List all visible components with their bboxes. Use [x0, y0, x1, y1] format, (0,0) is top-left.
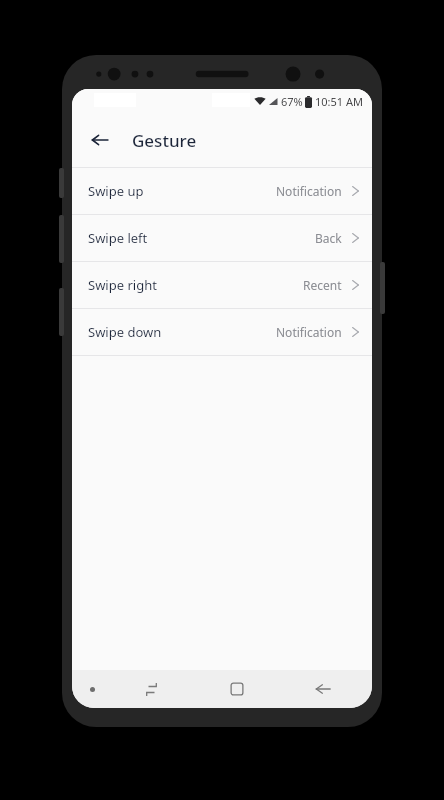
button[interactable]: Swipe right	[72, 262, 372, 308]
staticText: 10:51 AM	[315, 94, 363, 109]
staticText: Notification	[276, 183, 342, 199]
staticText: Notification	[276, 324, 342, 340]
staticText: Gesture	[132, 129, 197, 152]
button[interactable]: Recents	[108, 670, 194, 708]
button[interactable]: Back	[280, 670, 366, 708]
staticText: Recent	[303, 277, 342, 293]
staticText: Back	[315, 230, 342, 246]
staticText: Swipe left	[88, 229, 148, 247]
button[interactable]: Back	[82, 122, 118, 158]
staticText: Swipe right	[88, 276, 157, 294]
staticText: 67%	[281, 94, 303, 109]
staticText: Swipe down	[88, 323, 162, 341]
button[interactable]: Swipe down	[72, 309, 372, 355]
staticText: Swipe up	[88, 182, 144, 200]
button[interactable]: Indicator	[80, 677, 104, 701]
button[interactable]: Home	[194, 670, 280, 708]
button[interactable]: Swipe up	[72, 168, 372, 214]
button[interactable]: Swipe left	[72, 215, 372, 261]
